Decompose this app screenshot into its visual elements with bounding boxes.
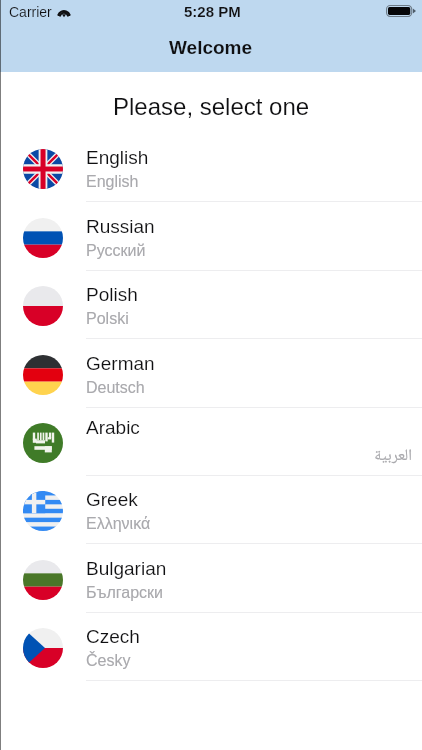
staticText: Polish — [86, 284, 138, 305]
staticText: Polski — [86, 310, 412, 328]
button[interactable]: English — [0, 134, 422, 202]
staticText: Please, select one — [113, 93, 310, 120]
staticText: Ελληνικά — [86, 515, 412, 533]
other: Wi-Fi — [57, 6, 71, 17]
staticText: German — [86, 353, 155, 374]
staticText: 5:28 PM — [184, 3, 241, 20]
button[interactable]: Czech — [0, 613, 422, 681]
staticText: Deutsch — [86, 379, 412, 397]
staticText: Български — [86, 584, 412, 602]
button[interactable]: Bulgarian — [0, 544, 422, 613]
button[interactable]: Polish — [0, 271, 422, 339]
button[interactable]: Greek — [0, 476, 422, 544]
staticText: Bulgarian — [86, 558, 167, 579]
other: Battery — [386, 5, 416, 17]
staticText: Carrier — [9, 4, 52, 20]
staticText: Welcome — [169, 37, 253, 58]
staticText: English — [86, 147, 149, 168]
staticText: Česky — [86, 652, 412, 670]
staticText: Greek — [86, 489, 138, 510]
staticText: العربية — [86, 443, 412, 470]
staticText: Czech — [86, 626, 140, 647]
staticText: English — [86, 173, 412, 191]
button[interactable]: German — [0, 339, 422, 408]
button[interactable]: Russian — [0, 202, 422, 271]
staticText: Arabic — [86, 417, 140, 438]
staticText: Russian — [86, 216, 155, 237]
staticText: Русский — [86, 242, 412, 260]
button[interactable]: Arabic — [0, 408, 422, 476]
